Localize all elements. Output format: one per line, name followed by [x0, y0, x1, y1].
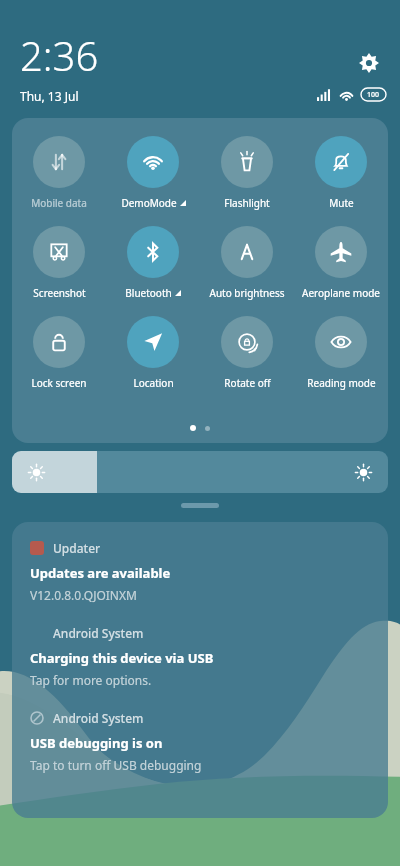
staticText: Android System	[53, 710, 144, 726]
button[interactable]: Mobile data	[12, 134, 106, 212]
staticText: Updater	[53, 540, 101, 556]
button[interactable]: Brightness	[12, 451, 388, 493]
staticText: Thu, 13 Jul	[20, 88, 79, 104]
button[interactable]: Lock screen	[12, 314, 106, 392]
staticText: Tap for more options.	[30, 672, 152, 688]
staticText: Mobile data	[31, 196, 87, 210]
button[interactable]: Bluetooth	[106, 224, 200, 302]
staticText: Auto brightness	[209, 286, 285, 300]
button[interactable]: Flashlight	[200, 134, 294, 212]
button[interactable]: Updater	[30, 540, 372, 603]
button[interactable]: Reading mode	[294, 314, 388, 392]
button[interactable]: Location	[106, 314, 200, 392]
staticText: Rotate off	[224, 376, 271, 390]
staticText: Android System	[53, 625, 144, 641]
staticText: DemoMode	[121, 196, 177, 210]
staticText: USB debugging is on	[30, 734, 163, 752]
staticText: Aeroplane mode	[302, 286, 380, 300]
staticText: Screenshot	[33, 286, 86, 300]
button[interactable]: Aeroplane mode	[294, 224, 388, 302]
staticText: Flashlight	[224, 196, 270, 210]
button[interactable]: Rotate off	[200, 314, 294, 392]
button[interactable]: Android System	[30, 710, 372, 773]
staticText: Lock screen	[31, 376, 87, 390]
staticText: V12.0.8.0.QJOINXM	[30, 587, 137, 603]
button[interactable]: Mute	[294, 134, 388, 212]
button[interactable]: Screenshot	[12, 224, 106, 302]
button[interactable]: DemoMode	[106, 134, 200, 212]
staticText: 100	[367, 90, 380, 100]
button[interactable]: Android System	[30, 625, 372, 688]
staticText: Reading mode	[307, 376, 376, 390]
staticText: Updates are available	[30, 564, 171, 582]
staticText: 2:36	[20, 28, 99, 82]
staticText: Tap to turn off USB debugging	[30, 757, 202, 773]
staticText: Charging this device via USB	[30, 649, 214, 667]
staticText: Mute	[329, 196, 354, 210]
button[interactable]: Auto brightness	[200, 224, 294, 302]
staticText: Location	[133, 376, 174, 390]
button[interactable]: Settings	[352, 46, 386, 80]
staticText: Bluetooth	[125, 286, 172, 300]
